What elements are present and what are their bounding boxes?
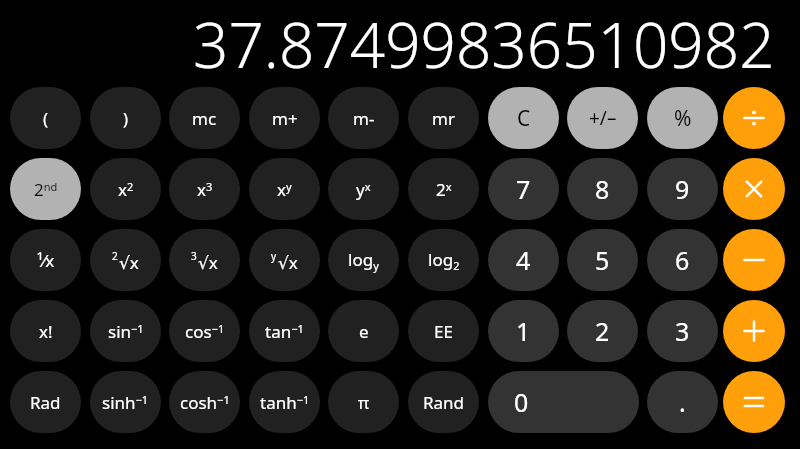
staticText: EE [434,320,453,343]
staticText: x! [39,320,53,343]
button[interactable]: mc [169,87,240,149]
button[interactable]: Percent [647,87,718,149]
staticText: √x [119,251,139,274]
staticText: y [271,249,277,263]
button[interactable]: Cube root [169,229,240,291]
staticText: 7 [516,172,531,206]
button[interactable]: y to the x [328,158,399,220]
staticText: 0 [514,385,529,419]
staticText: Rad [30,391,61,414]
button[interactable]: 6 [647,229,718,291]
staticText: mr [432,107,455,130]
button[interactable]: 1 [488,300,559,362]
staticText: 3 [675,314,690,348]
button[interactable]: Inverse cosine [169,300,240,362]
button[interactable]: Equals [723,371,785,433]
button[interactable]: log base y [328,229,399,291]
button[interactable]: Right parenthesis [90,87,161,149]
staticText: m- [353,107,375,130]
button[interactable]: 8 [567,158,638,220]
button[interactable]: x to the y [249,158,320,220]
staticText: ) [123,107,129,130]
button[interactable]: One over x [10,229,81,291]
staticText: √x [278,251,298,274]
button[interactable]: Euler's number [328,300,399,362]
button[interactable]: m- [328,87,399,149]
button[interactable]: Second functions [10,158,81,220]
staticText: tan−1 [265,320,304,343]
button[interactable]: Inverse hyperbolic sine [90,371,161,433]
button[interactable]: Multiply [723,158,785,220]
button[interactable]: mr [408,87,479,149]
staticText: x3 [197,178,213,201]
staticText: xy [277,178,292,201]
staticText: C [517,104,531,133]
staticText: Rand [423,391,465,414]
button[interactable]: 7 [488,158,559,220]
button[interactable]: C [488,87,559,149]
staticText: 1 [516,314,531,348]
staticText: 6 [675,243,690,277]
staticText: 8 [595,172,610,206]
button[interactable]: m+ [249,87,320,149]
staticText: 4 [516,243,531,277]
staticText: x2 [118,178,134,201]
button[interactable]: Divide [723,87,785,149]
staticText: sinh−1 [102,391,149,414]
staticText: m+ [272,107,298,130]
staticText: 9 [675,172,690,206]
button[interactable]: Factorial [10,300,81,362]
staticText: 5 [595,243,610,277]
staticText: ¹⁄x [37,249,55,272]
button[interactable]: 3 [647,300,718,362]
button[interactable]: Inverse sine [90,300,161,362]
button[interactable]: x cubed [169,158,240,220]
button[interactable]: 9 [647,158,718,220]
button[interactable]: Plus [723,300,785,362]
button[interactable]: Minus [723,229,785,291]
button[interactable]: Square root [90,229,161,291]
button[interactable]: 4 [488,229,559,291]
button[interactable]: Rand [408,371,479,433]
button[interactable]: 0 [488,371,639,433]
button[interactable]: Inverse hyperbolic cosine [169,371,240,433]
staticText: √x [198,251,218,274]
staticText: e [359,320,369,343]
button[interactable]: two to the x [408,158,479,220]
button[interactable]: Y root [249,229,320,291]
button[interactable]: Left parenthesis [10,87,81,149]
staticText: ( [43,107,49,130]
button[interactable]: Plus minus [567,87,638,149]
button[interactable]: 5 [567,229,638,291]
button[interactable]: Inverse tangent [249,300,320,362]
staticText: π [358,391,370,414]
staticText: yx [356,178,371,201]
button[interactable]: Inverse hyperbolic tangent [249,371,320,433]
staticText: . [679,385,686,419]
staticText: 2x [436,178,452,201]
button[interactable]: Decimal point [647,371,718,433]
button[interactable]: 2 [567,300,638,362]
staticText: 3 [191,249,197,263]
button[interactable]: Pi [328,371,399,433]
staticText: mc [192,107,217,130]
staticText: sin−1 [108,320,144,343]
staticText: 2 [112,249,118,263]
staticText: logy [348,248,379,273]
staticText: cosh−1 [180,391,230,414]
staticText: 2 [595,314,610,348]
button[interactable]: EE [408,300,479,362]
staticText: % [674,104,692,133]
staticText: 37.87499836510982 [193,2,775,86]
button[interactable]: log base 2 [408,229,479,291]
staticText: 2nd [34,178,58,201]
button[interactable]: x squared [90,158,161,220]
staticText: +/– [589,105,617,131]
staticText: log2 [428,248,460,273]
staticText: cos−1 [185,320,225,343]
button[interactable]: Radians [10,371,81,433]
staticText: tanh−1 [260,391,310,414]
